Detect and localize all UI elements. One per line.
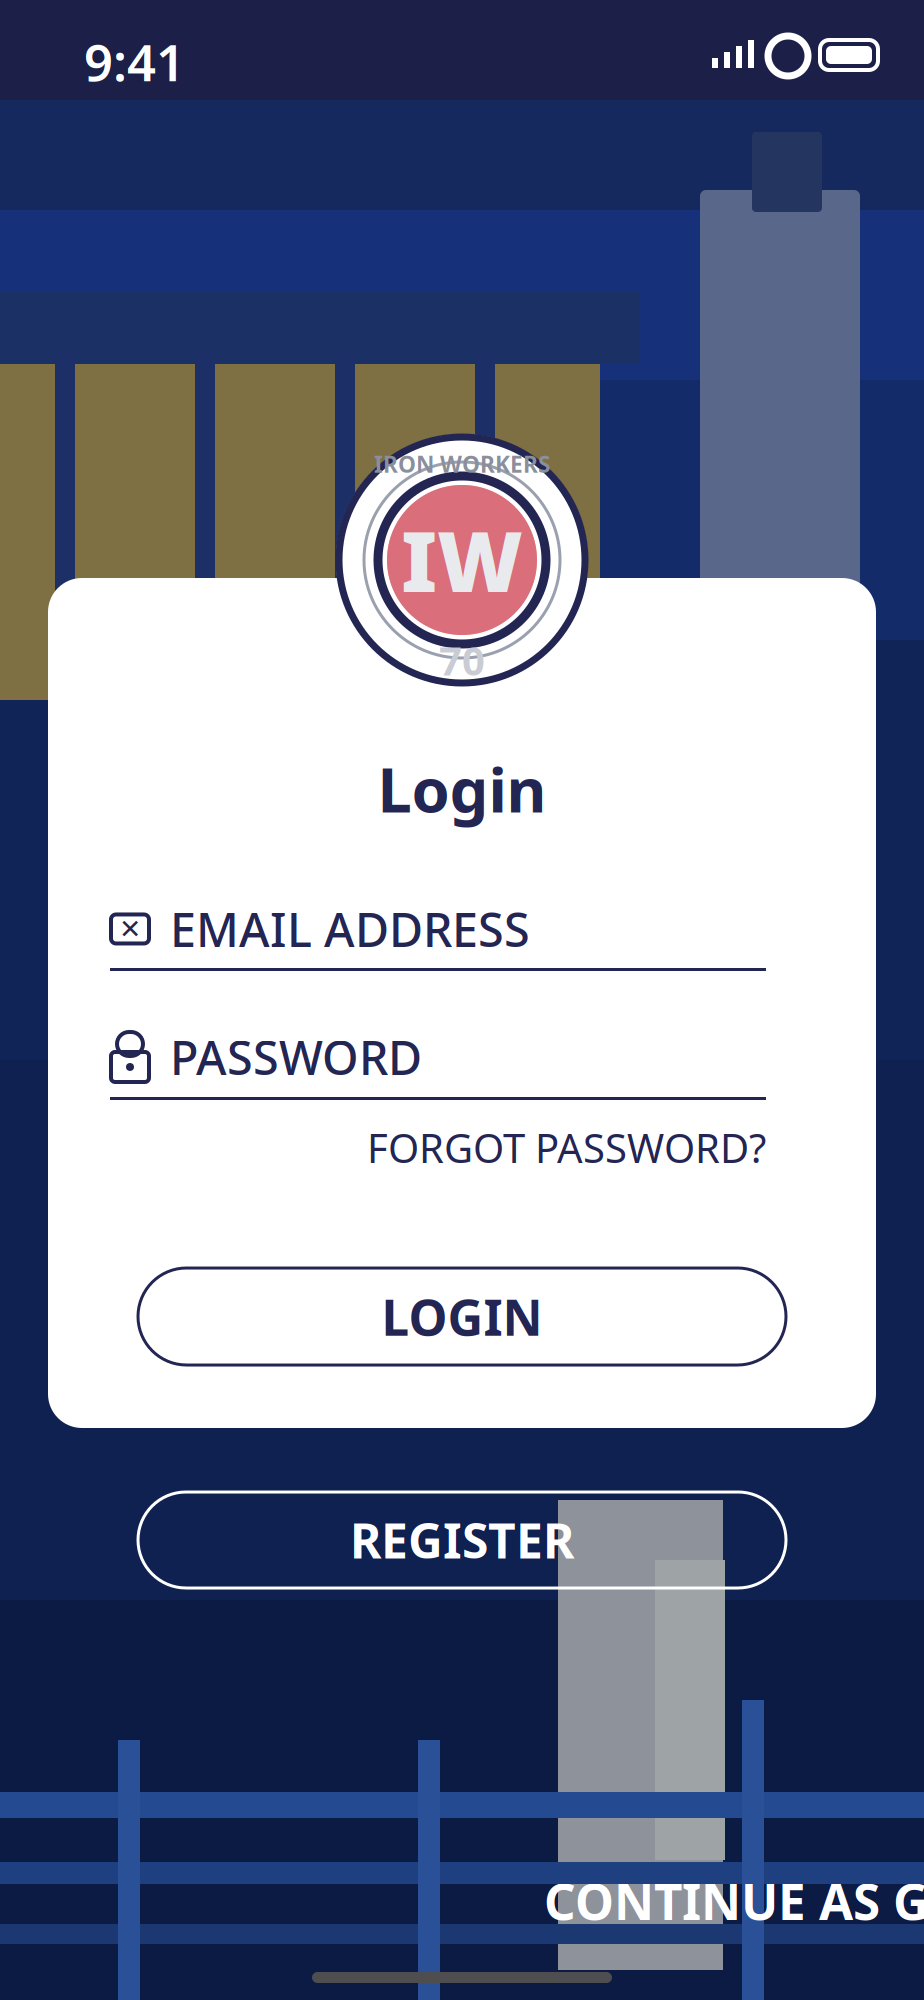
staticText: 9:41 <box>84 28 185 95</box>
staticText: REGISTER <box>350 1508 574 1572</box>
staticText: PASSWORD <box>170 1026 422 1088</box>
staticText: LOGIN <box>381 1284 542 1349</box>
button[interactable]: LOGIN <box>138 1268 786 1365</box>
button[interactable]: REGISTER <box>138 1492 786 1588</box>
staticText: IRON WORKERS <box>374 449 550 479</box>
button[interactable]: FORGOT PASSWORD? <box>110 1113 766 1182</box>
button[interactable]: CONTINUE AS GUEST <box>536 1858 924 1943</box>
staticText: Login <box>377 748 546 829</box>
staticText: CONTINUE AS GUEST <box>544 1868 924 1933</box>
staticText: FORGOT PASSWORD? <box>367 1121 766 1174</box>
staticText: 70 <box>439 633 485 686</box>
staticText: IW <box>401 505 523 615</box>
staticText: EMAIL ADDRESS <box>170 898 530 960</box>
staticText: ✕ <box>119 914 141 944</box>
